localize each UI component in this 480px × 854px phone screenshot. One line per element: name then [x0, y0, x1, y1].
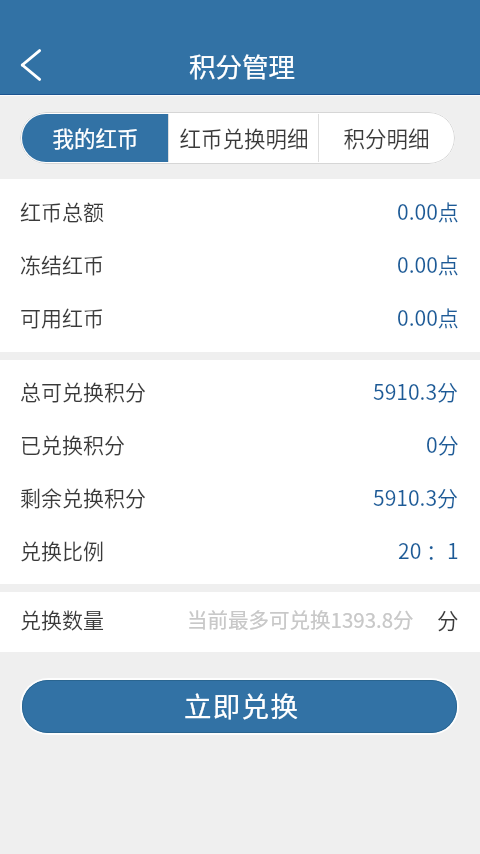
staticText: 5910.3分: [373, 376, 459, 406]
button[interactable]: 我的红币: [22, 114, 168, 162]
staticText: 积分明细: [343, 122, 430, 153]
staticText: 可用红币: [20, 302, 104, 332]
staticText: 我的红币: [52, 122, 139, 153]
staticText: 已兑换积分: [20, 429, 125, 459]
button[interactable]: Back: [10, 41, 58, 89]
staticText: 兑换比例: [20, 535, 104, 565]
staticText: 0.00点: [397, 249, 459, 279]
button[interactable]: 红币总额: [0, 186, 480, 239]
staticText: 积分管理: [189, 46, 295, 84]
button[interactable]: 当前最多可兑换1393.8分: [120, 607, 414, 637]
staticText: 0.00点: [397, 196, 459, 226]
staticText: 红币总额: [20, 196, 104, 226]
button[interactable]: 积分明细: [319, 114, 453, 162]
button[interactable]: 红币兑换明细: [169, 114, 318, 162]
button[interactable]: 立即兑换: [20, 678, 459, 735]
staticText: 红币兑换明细: [179, 122, 309, 153]
button[interactable]: 已兑换积分: [0, 419, 480, 472]
staticText: 兑换数量: [20, 604, 104, 634]
staticText: 总可兑换积分: [20, 376, 146, 406]
button[interactable]: 兑换比例: [0, 525, 480, 578]
button[interactable]: 总可兑换积分: [0, 366, 480, 419]
staticText: 剩余兑换积分: [20, 482, 146, 512]
button[interactable]: 冻结红币: [0, 239, 480, 292]
staticText: 当前最多可兑换1393.8分: [187, 604, 414, 634]
staticText: 20 ：1: [398, 535, 459, 565]
staticText: 冻结红币: [20, 249, 104, 279]
button[interactable]: 剩余兑换积分: [0, 472, 480, 525]
staticText: 立即兑换: [184, 685, 300, 725]
staticText: 0分: [426, 429, 459, 459]
staticText: 分: [437, 604, 459, 635]
button[interactable]: 可用红币: [0, 292, 480, 345]
staticText: 0.00点: [397, 302, 459, 332]
staticText: 5910.3分: [373, 482, 459, 512]
